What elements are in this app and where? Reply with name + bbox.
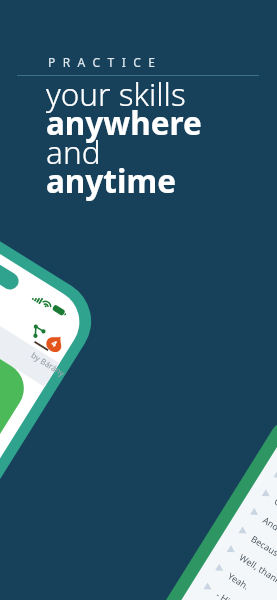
staticText: PRACTICE [48,54,163,70]
staticText: and [46,130,101,173]
staticText: your skills [46,72,186,115]
staticText: anytime [46,159,176,202]
staticText: anywhere [46,101,202,144]
